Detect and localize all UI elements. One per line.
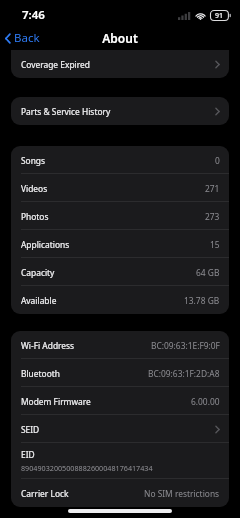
other: More <box>215 107 220 116</box>
staticText: Coverage Expired <box>21 59 90 70</box>
button[interactable]: Bluetooth <box>11 359 229 387</box>
staticText: Modem Firmware <box>21 396 91 407</box>
button[interactable]: Videos <box>11 174 229 202</box>
button[interactable]: Modem Firmware <box>11 387 229 415</box>
staticText: 13.78 GB <box>184 295 220 306</box>
button[interactable]: SEID <box>11 415 229 443</box>
staticText: Applications <box>21 239 70 250</box>
staticText: 89049032005008882600048176417434 <box>21 463 153 473</box>
other: More <box>215 425 220 434</box>
button[interactable]: Wi-Fi Address <box>11 331 229 359</box>
button[interactable]: Back <box>0 28 46 48</box>
staticText: Bluetooth <box>21 368 60 379</box>
button[interactable]: EID <box>11 443 229 479</box>
button[interactable]: Parts & Service History <box>11 97 229 125</box>
staticText: Capacity <box>21 267 55 278</box>
staticText: 91 <box>215 11 224 21</box>
staticText: Photos <box>21 211 49 222</box>
staticText: Carrier Lock <box>21 488 69 499</box>
staticText: About <box>102 30 138 46</box>
staticText: 7:46 <box>22 7 45 23</box>
button[interactable]: Available <box>11 286 229 314</box>
other: More <box>215 60 220 69</box>
staticText: BC:09:63:1E:F9:0F <box>151 340 220 351</box>
staticText: Available <box>21 295 57 306</box>
staticText: 273 <box>205 211 220 222</box>
button[interactable]: Carrier Lock <box>11 479 229 507</box>
staticText: 64 GB <box>196 267 220 278</box>
staticText: 6.00.00 <box>191 396 220 407</box>
staticText: 15 <box>210 239 220 250</box>
staticText: EID <box>21 449 35 460</box>
staticText: No SIM restrictions <box>144 488 220 499</box>
staticText: SEID <box>21 424 40 435</box>
button[interactable]: Coverage Expired <box>11 50 229 78</box>
button[interactable]: Songs <box>11 146 229 174</box>
button[interactable]: Applications <box>11 230 229 258</box>
button[interactable]: Capacity <box>11 258 229 286</box>
staticText: Back <box>14 30 40 46</box>
staticText: 271 <box>205 183 220 194</box>
staticText: BC:09:63:1F:2D:A8 <box>148 368 220 379</box>
staticText: Songs <box>21 155 46 166</box>
staticText: Videos <box>21 183 48 194</box>
staticText: Wi-Fi Address <box>21 340 75 351</box>
staticText: 0 <box>215 155 220 166</box>
staticText: Parts & Service History <box>21 106 111 117</box>
button[interactable]: Photos <box>11 202 229 230</box>
